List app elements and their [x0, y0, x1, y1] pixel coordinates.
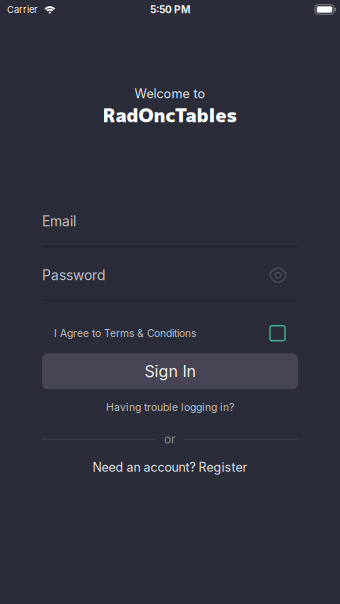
button[interactable]: I Agree to Terms & Conditions [42, 325, 298, 341]
staticText: Carrier [7, 4, 38, 15]
button[interactable]: Sign In [42, 353, 298, 389]
button[interactable]: Having trouble logging in? [42, 400, 298, 414]
staticText: Sign In [144, 361, 195, 381]
staticText: I Agree to Terms & Conditions [54, 327, 196, 339]
button[interactable]: Need an account? Register [42, 459, 298, 475]
staticText: Having trouble logging in? [106, 401, 234, 413]
staticText: Email [42, 213, 76, 230]
staticText: RadOncTables [102, 102, 237, 128]
staticText: Welcome to [134, 86, 205, 101]
staticText: 5:50 PM [150, 3, 190, 16]
staticText: or [164, 432, 176, 446]
staticText: Need an account? Register [92, 460, 247, 475]
button[interactable]: Show password [269, 269, 287, 281]
staticText: Password [42, 267, 105, 284]
